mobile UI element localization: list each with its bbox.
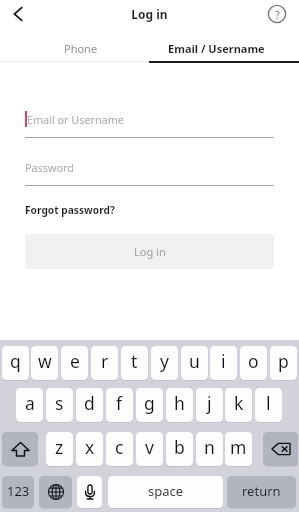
button[interactable]: b <box>166 432 193 466</box>
staticText: Email / Username <box>168 41 265 56</box>
button[interactable]: Voice input <box>77 476 102 508</box>
button[interactable]: y <box>151 346 178 380</box>
button[interactable]: n <box>196 432 223 466</box>
button[interactable]: c <box>106 432 133 466</box>
button[interactable]: v <box>136 432 163 466</box>
staticText: w <box>38 349 52 373</box>
button[interactable]: z <box>46 432 73 466</box>
staticText: h <box>174 391 185 415</box>
button[interactable]: f <box>106 388 133 422</box>
button[interactable]: u <box>181 346 208 380</box>
staticText: z <box>55 435 64 459</box>
button[interactable]: 123 <box>2 476 34 508</box>
staticText: Password <box>25 160 74 175</box>
staticText: p <box>278 349 289 373</box>
button[interactable] <box>25 157 274 184</box>
button[interactable]: t <box>121 346 148 380</box>
button[interactable]: Shift <box>2 432 38 466</box>
staticText: l <box>266 391 271 415</box>
button[interactable]: w <box>31 346 58 380</box>
button[interactable]: j <box>196 388 223 422</box>
button[interactable]: q <box>2 346 29 380</box>
staticText: 123 <box>7 482 30 500</box>
staticText: space <box>148 482 184 500</box>
button[interactable]: o <box>240 346 267 380</box>
button[interactable]: Back <box>6 2 30 26</box>
staticText: o <box>248 349 259 373</box>
button[interactable]: space <box>108 476 223 508</box>
staticText: n <box>204 435 215 459</box>
staticText: t <box>131 349 138 373</box>
staticText: b <box>174 435 185 459</box>
button[interactable]: Help <box>265 2 289 26</box>
button[interactable]: e <box>61 346 88 380</box>
staticText: m <box>230 435 247 459</box>
button[interactable]: r <box>91 346 118 380</box>
button[interactable]: g <box>136 388 163 422</box>
staticText: Log in <box>134 244 166 259</box>
button[interactable]: i <box>210 346 237 380</box>
staticText: v <box>145 435 154 459</box>
staticText: x <box>85 435 95 459</box>
button[interactable]: Backspace <box>263 432 298 466</box>
button[interactable]: s <box>46 388 73 422</box>
button[interactable]: l <box>255 388 282 422</box>
staticText: j <box>207 391 212 415</box>
staticText: s <box>55 391 64 415</box>
staticText: Forgot password? <box>25 203 115 217</box>
staticText: ? <box>275 7 280 22</box>
staticText: d <box>84 391 95 415</box>
staticText: g <box>144 391 155 415</box>
button[interactable]: m <box>225 432 252 466</box>
staticText: Log in <box>0 6 299 22</box>
staticText: a <box>25 391 35 415</box>
staticText: u <box>189 349 200 373</box>
button[interactable]: x <box>76 432 103 466</box>
staticText: Phone <box>64 41 98 56</box>
staticText: i <box>221 349 226 373</box>
staticText: k <box>234 391 244 415</box>
button[interactable] <box>25 108 274 137</box>
button[interactable]: Forgot password? <box>25 202 121 217</box>
button[interactable]: a <box>16 388 43 422</box>
staticText: r <box>101 349 109 373</box>
staticText: c <box>115 435 124 459</box>
button[interactable]: d <box>76 388 103 422</box>
button[interactable]: Log in <box>25 234 274 269</box>
button[interactable]: Switch keyboard <box>39 476 72 508</box>
button[interactable]: Email / Username <box>149 33 299 62</box>
staticText: y <box>160 349 169 373</box>
button[interactable]: p <box>270 346 297 380</box>
button[interactable]: h <box>166 388 193 422</box>
staticText: Email or Username <box>27 112 124 127</box>
staticText: e <box>70 349 80 373</box>
staticText: f <box>116 391 123 415</box>
staticText: return <box>242 482 281 500</box>
button[interactable]: Phone <box>0 33 149 62</box>
staticText: q <box>10 349 21 373</box>
button[interactable]: return <box>227 476 296 508</box>
button[interactable]: k <box>225 388 252 422</box>
